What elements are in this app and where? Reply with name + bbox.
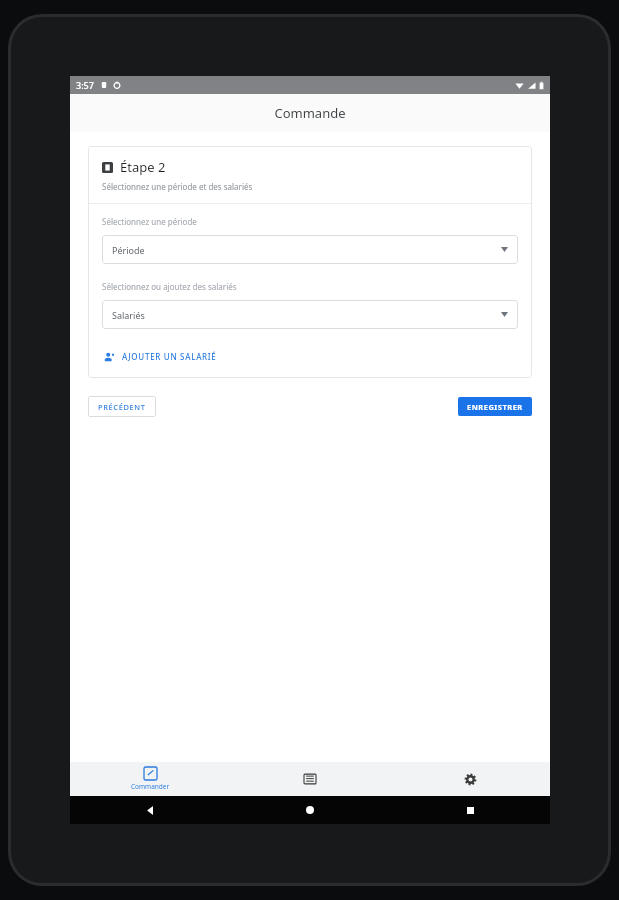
button[interactable]: Back <box>70 796 230 824</box>
staticText: Période <box>112 244 145 256</box>
button[interactable]: Recent apps <box>390 796 550 824</box>
staticText: PRÉCÉDENT <box>98 402 146 412</box>
button[interactable]: Salariés <box>102 300 518 329</box>
button[interactable]: AJOUTER UN SALARIÉ <box>102 349 219 364</box>
staticText: 3:57 <box>76 79 94 91</box>
staticText: Étape 2 <box>120 158 166 176</box>
button[interactable]: PRÉCÉDENT <box>88 396 156 417</box>
staticText: Sélectionnez une période <box>102 216 197 227</box>
staticText: Commander <box>131 782 170 791</box>
button[interactable]: Période <box>102 235 518 264</box>
staticText: Salariés <box>112 309 145 321</box>
button[interactable]: Home <box>230 796 390 824</box>
staticText: Commande <box>274 104 346 122</box>
staticText: AJOUTER UN SALARIÉ <box>122 351 217 362</box>
staticText: Sélectionnez une période et des salariés <box>102 181 253 192</box>
button[interactable]: ENREGISTRER <box>458 397 532 416</box>
staticText: Sélectionnez ou ajoutez des salariés <box>102 281 237 292</box>
button[interactable]: Commander <box>70 762 230 796</box>
button[interactable]: Paramètres <box>390 762 550 796</box>
staticText: ENREGISTRER <box>467 402 523 412</box>
button[interactable]: Liste des commandes <box>230 762 390 796</box>
